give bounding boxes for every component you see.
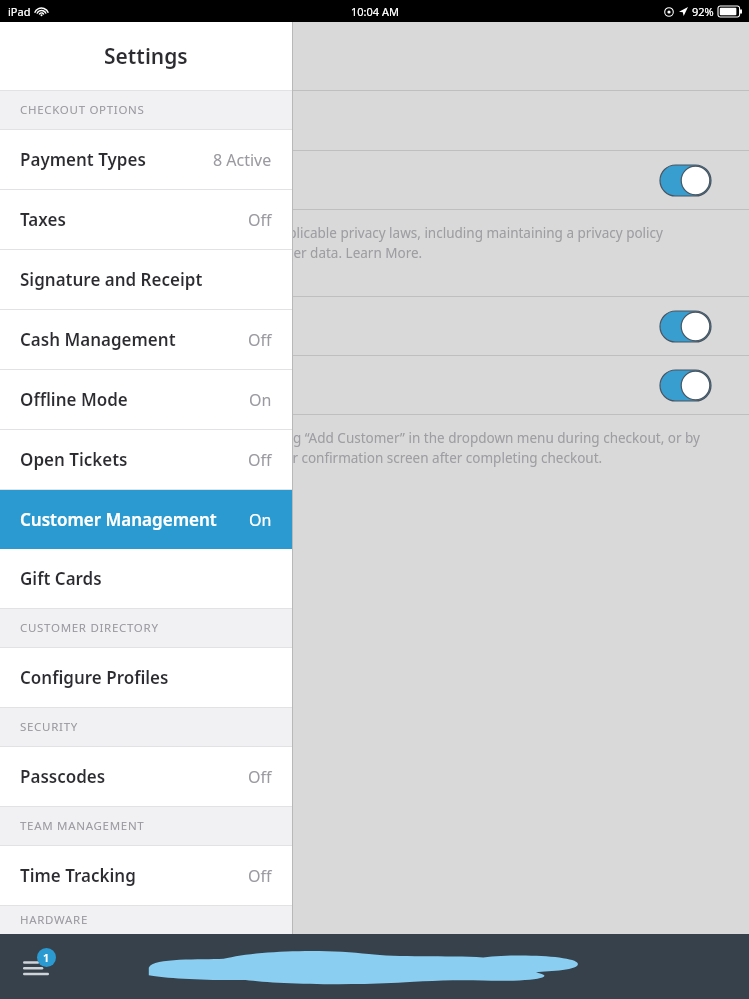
other: Toggle xyxy=(660,311,711,342)
staticText: Gift Cards xyxy=(20,567,102,590)
staticText: Customers in Checkout xyxy=(22,315,204,337)
staticText: 92% xyxy=(692,4,714,19)
staticText: On xyxy=(249,389,272,411)
staticText: 8 Active xyxy=(213,149,272,171)
staticText: Off xyxy=(248,766,272,788)
staticText: Offline Mode xyxy=(20,388,128,411)
button[interactable]: Cash Management xyxy=(0,310,292,369)
staticText: 10:04 AM xyxy=(351,4,399,19)
staticText: Customer Management xyxy=(22,43,254,70)
staticText: TEAM MANAGEMENT xyxy=(20,818,145,834)
staticText: Customer Management xyxy=(20,508,217,531)
staticText: Configure Profiles xyxy=(20,666,169,689)
staticText: Open Tickets xyxy=(20,448,128,471)
staticText: Time Tracking xyxy=(20,864,136,887)
button[interactable]: Time Tracking xyxy=(0,846,292,905)
button[interactable]: Taxes xyxy=(0,190,292,249)
staticText: Signature and Receipt xyxy=(20,268,203,291)
staticText: Off xyxy=(248,449,272,471)
staticText: SECURITY xyxy=(20,719,78,735)
staticText: Settings xyxy=(104,42,188,71)
staticText: Customer Management xyxy=(22,169,208,191)
other: Toggle xyxy=(660,370,711,401)
button[interactable]: Gift Cards xyxy=(0,549,292,608)
button[interactable]: Passcodes xyxy=(0,747,292,806)
staticText: iPad xyxy=(8,4,31,19)
button[interactable]: Customer Management xyxy=(0,490,292,549)
button[interactable]: Customer Management xyxy=(0,151,749,209)
staticText: Off xyxy=(248,865,272,887)
button[interactable]: Payment Types xyxy=(0,130,292,189)
staticText: CUSTOMER DIRECTORY xyxy=(20,620,159,636)
staticText: 1 xyxy=(43,950,50,965)
staticText: Customers after Checkout xyxy=(22,374,227,396)
staticText: You can add a customer to a sale by tapp… xyxy=(22,429,705,467)
button[interactable]: Customers in Checkout xyxy=(0,297,749,355)
button[interactable]: Configure Profiles xyxy=(0,648,292,707)
other: Toggle xyxy=(660,165,711,196)
button[interactable]: Menu xyxy=(14,945,58,989)
button[interactable]: Open Tickets xyxy=(0,430,292,489)
staticText: Cash Management xyxy=(20,328,176,351)
button[interactable]: Customers after Checkout xyxy=(0,356,749,414)
staticText: HARDWARE xyxy=(20,912,89,928)
button[interactable]: Offline Mode xyxy=(0,370,292,429)
staticText: Taxes xyxy=(20,208,66,231)
staticText: Off xyxy=(248,209,272,231)
staticText: On xyxy=(249,509,272,531)
staticText: You are responsible for complying with a… xyxy=(22,224,689,262)
staticText: Payment Types xyxy=(20,148,146,171)
staticText: Off xyxy=(248,329,272,351)
staticText: CHECKOUT OPTIONS xyxy=(20,102,145,118)
button[interactable]: Signature and Receipt xyxy=(0,250,292,309)
staticText: Passcodes xyxy=(20,765,106,788)
